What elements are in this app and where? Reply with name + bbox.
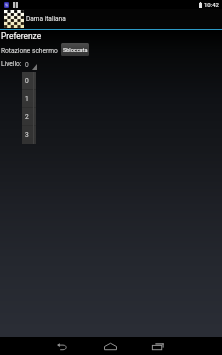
staticText: Sbloccata	[63, 47, 88, 53]
staticText: 2	[25, 113, 29, 121]
staticText: Livello:	[1, 60, 22, 68]
button[interactable]: Dama italiana	[0, 9, 222, 29]
button[interactable]: Sbloccata	[61, 43, 89, 56]
button[interactable]: Home	[93, 337, 127, 355]
staticText: 0	[25, 77, 29, 85]
button[interactable]: Recent apps	[141, 337, 175, 355]
staticText: Rotazione schermo	[1, 47, 58, 55]
staticText: Dama italiana	[26, 15, 66, 23]
button[interactable]: Livello	[23, 59, 38, 72]
staticText: Preferenze	[1, 31, 42, 41]
button[interactable]: Back	[45, 337, 79, 355]
button[interactable]: 3	[22, 126, 36, 144]
button[interactable]: 0	[22, 72, 36, 90]
button[interactable]: 2	[22, 108, 36, 126]
staticText: 0	[25, 61, 29, 69]
button[interactable]: 1	[22, 90, 36, 108]
staticText: 3	[25, 131, 29, 139]
staticText: 1	[25, 95, 29, 103]
staticText: 10:42	[204, 1, 219, 8]
